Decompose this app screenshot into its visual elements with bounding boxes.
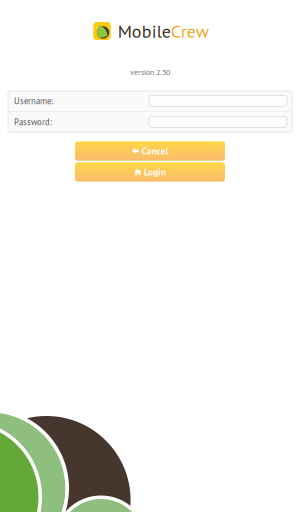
staticText: Login bbox=[144, 166, 166, 178]
staticText: Mobile bbox=[118, 19, 171, 43]
staticText: Username: bbox=[14, 95, 53, 107]
button[interactable]: Cancel bbox=[75, 141, 225, 160]
staticText: Password: bbox=[14, 116, 52, 128]
staticText: Crew bbox=[171, 19, 209, 43]
button[interactable]: Login bbox=[75, 162, 225, 181]
staticText: Cancel bbox=[141, 145, 168, 157]
staticText: version 2.30 bbox=[130, 67, 170, 77]
